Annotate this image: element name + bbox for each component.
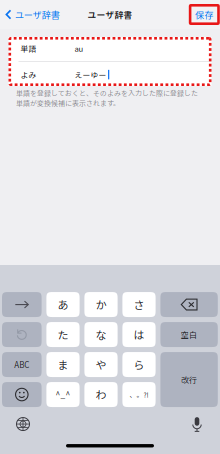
staticText: 、。?! (129, 390, 148, 399)
staticText: えーゆー (74, 69, 106, 80)
staticText: あ (57, 297, 68, 312)
button[interactable]: 空白 (160, 322, 218, 347)
button[interactable]: Next keyboard (8, 412, 38, 436)
button[interactable]: か (84, 292, 118, 317)
staticText: た (57, 327, 68, 342)
staticText: ABC (14, 359, 29, 370)
staticText: ら (133, 357, 144, 372)
button[interactable]: ^_^ (46, 382, 80, 407)
staticText: au (74, 43, 83, 54)
button[interactable]: さ (122, 292, 156, 317)
staticText: 単語を登録しておくと、そのよみを入力した際に登録した 単語が変換候補に表示されま… (16, 88, 198, 108)
button[interactable]: ABC (2, 352, 42, 377)
staticText: 保存 (195, 8, 213, 21)
button[interactable]: 、。?! (122, 382, 156, 407)
button[interactable]: 改行 (160, 352, 218, 407)
staticText: ま (57, 357, 68, 372)
button[interactable]: わ (84, 382, 118, 407)
staticText: ユーザ辞書 (87, 8, 132, 21)
staticText: さ (133, 297, 144, 312)
button[interactable]: ユーザ辞書 (0, 3, 60, 26)
button[interactable]: Delete (160, 292, 218, 317)
button[interactable]: 保存 (190, 5, 220, 24)
button[interactable]: や (84, 352, 118, 377)
button[interactable]: ら (122, 352, 156, 377)
staticText: は (133, 327, 144, 342)
staticText: ユーザ辞書 (15, 8, 60, 21)
staticText: 改行 (181, 374, 197, 385)
staticText: ^_^ (55, 388, 70, 401)
button[interactable]: な (84, 322, 118, 347)
staticText: 単語 (20, 43, 36, 54)
staticText: 空白 (181, 329, 197, 340)
button[interactable]: Next candidate (2, 292, 42, 317)
button[interactable]: Emoji (2, 382, 42, 407)
staticText: や (95, 357, 106, 372)
button[interactable]: あ (46, 292, 80, 317)
button[interactable]: は (122, 322, 156, 347)
staticText: か (95, 297, 106, 312)
staticText: な (95, 327, 106, 342)
staticText: わ (95, 387, 106, 402)
staticText: よみ (20, 69, 36, 80)
button[interactable]: Undo (2, 322, 42, 347)
button[interactable]: ま (46, 352, 80, 377)
button[interactable]: Dictation (182, 412, 212, 436)
button[interactable]: た (46, 322, 80, 347)
